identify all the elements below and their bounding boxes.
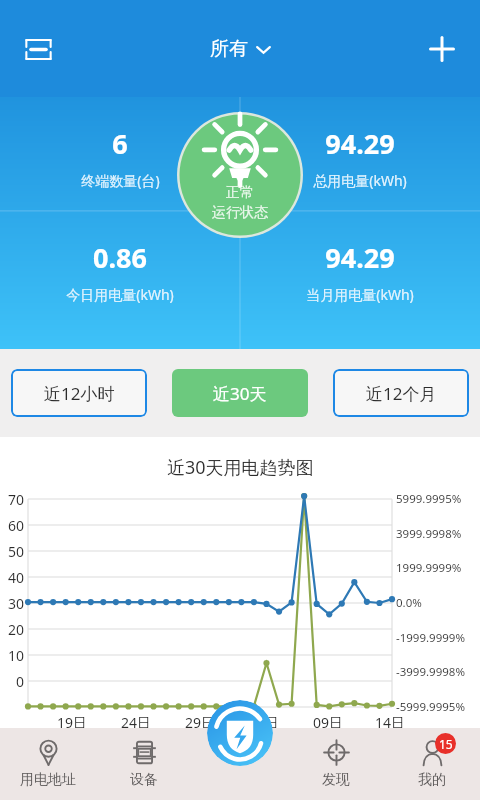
button[interactable]: 设备 <box>96 728 192 800</box>
staticText: 29日 <box>180 713 220 732</box>
staticText: 10 <box>1 646 24 665</box>
staticText: -1999.9999% <box>396 630 465 646</box>
staticText: 近30天用电趋势图 <box>167 455 314 480</box>
staticText: 0.0% <box>396 595 422 611</box>
staticText: 用电地址 <box>20 771 76 789</box>
staticText: 19日 <box>52 713 92 732</box>
staticText: 当月用电量(kWh) <box>306 285 414 304</box>
staticText: -5999.9995% <box>396 699 465 715</box>
staticText: 正常 <box>226 184 254 202</box>
staticText: 今日用电量(kWh) <box>66 285 174 304</box>
staticText: 20 <box>1 620 24 639</box>
staticText: 14日 <box>370 713 410 732</box>
button[interactable]: Power protection <box>207 700 273 766</box>
staticText: 我的 <box>418 771 446 789</box>
staticText: 6 <box>112 125 128 162</box>
staticText: 发现 <box>322 771 350 789</box>
staticText: 终端数量(台) <box>81 171 160 190</box>
staticText: 总用电量(kWh) <box>313 171 407 190</box>
staticText: 近12个月 <box>366 382 437 405</box>
staticText: 94.29 <box>325 125 395 162</box>
staticText: -3999.9998% <box>396 664 465 680</box>
staticText: 设备 <box>130 771 158 789</box>
staticText: 所有 <box>210 37 248 61</box>
staticText: 近30天 <box>213 382 267 405</box>
staticText: 5999.9995% <box>396 491 462 507</box>
button[interactable]: 15 <box>384 728 480 800</box>
staticText: 0.86 <box>93 239 147 276</box>
staticText: 94.29 <box>325 239 395 276</box>
staticText: 15 <box>439 736 453 752</box>
staticText: 1999.9999% <box>396 560 462 576</box>
button[interactable]: 发现 <box>288 728 384 800</box>
button[interactable]: Add <box>416 23 468 75</box>
button[interactable]: 近12个月 <box>333 369 469 417</box>
staticText: 3999.9998% <box>396 526 462 542</box>
staticText: 运行状态 <box>212 204 268 222</box>
staticText: 近12小时 <box>44 382 115 405</box>
button[interactable]: 近12小时 <box>11 369 147 417</box>
staticText: 60 <box>1 516 24 535</box>
staticText: 04日 <box>244 713 284 732</box>
staticText: 50 <box>1 542 24 561</box>
button[interactable]: 用电地址 <box>0 728 96 800</box>
staticText: 0 <box>1 672 24 691</box>
button[interactable]: Switch layout <box>12 23 64 75</box>
staticText: 24日 <box>116 713 156 732</box>
staticText: 40 <box>1 568 24 587</box>
staticText: 30 <box>1 594 24 613</box>
staticText: 70 <box>1 490 24 509</box>
staticText: 09日 <box>308 713 348 732</box>
button[interactable]: 近30天 <box>172 369 308 417</box>
button[interactable]: 所有 <box>204 31 277 67</box>
